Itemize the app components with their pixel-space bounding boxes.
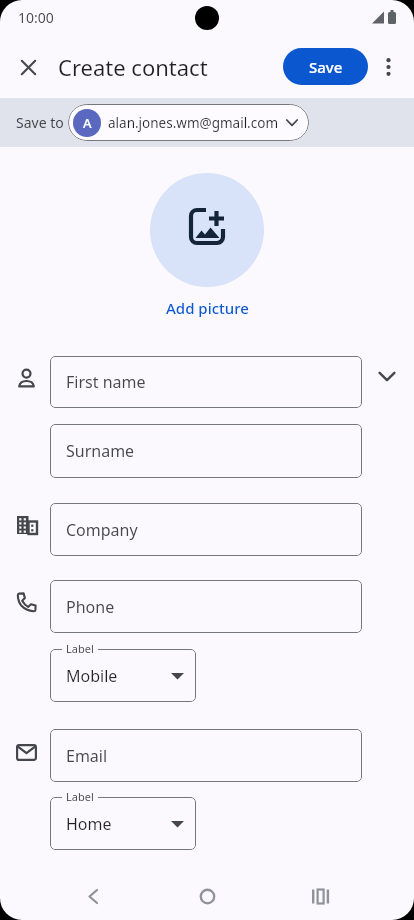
button[interactable]: Email	[50, 729, 362, 782]
staticText: alan.jones.wm@gmail.com	[108, 114, 279, 132]
button[interactable]: Save	[283, 48, 368, 85]
button[interactable]	[374, 47, 402, 87]
staticText: Surname	[66, 440, 135, 462]
staticText: Save	[309, 57, 343, 77]
button[interactable]: Phone	[50, 580, 362, 633]
button[interactable]: First name	[50, 356, 362, 408]
staticText: Create contact	[58, 52, 208, 82]
button[interactable]	[150, 173, 264, 287]
button[interactable]: Surname	[50, 424, 362, 478]
button[interactable]: A	[68, 104, 309, 141]
button[interactable]	[8, 47, 48, 87]
staticText: Mobile	[66, 665, 118, 687]
button[interactable]: Mobile	[50, 649, 196, 702]
staticText: Phone	[66, 596, 115, 618]
staticText: Company	[66, 519, 138, 541]
staticText: 10:00	[18, 8, 54, 27]
staticText: Label	[66, 641, 94, 656]
button[interactable]: Add picture	[147, 296, 267, 320]
staticText: Add picture	[166, 298, 249, 318]
staticText: Home	[66, 813, 112, 835]
button[interactable]	[365, 355, 409, 399]
staticText: Save to	[16, 113, 64, 132]
staticText: Label	[66, 789, 94, 804]
button[interactable]	[300, 876, 340, 916]
staticText: A	[83, 114, 92, 132]
staticText: Email	[66, 745, 108, 767]
button[interactable]	[73, 876, 113, 916]
staticText: First name	[66, 371, 146, 393]
button[interactable]: Home	[50, 797, 196, 850]
button[interactable]	[187, 876, 227, 916]
button[interactable]: Company	[50, 503, 362, 556]
